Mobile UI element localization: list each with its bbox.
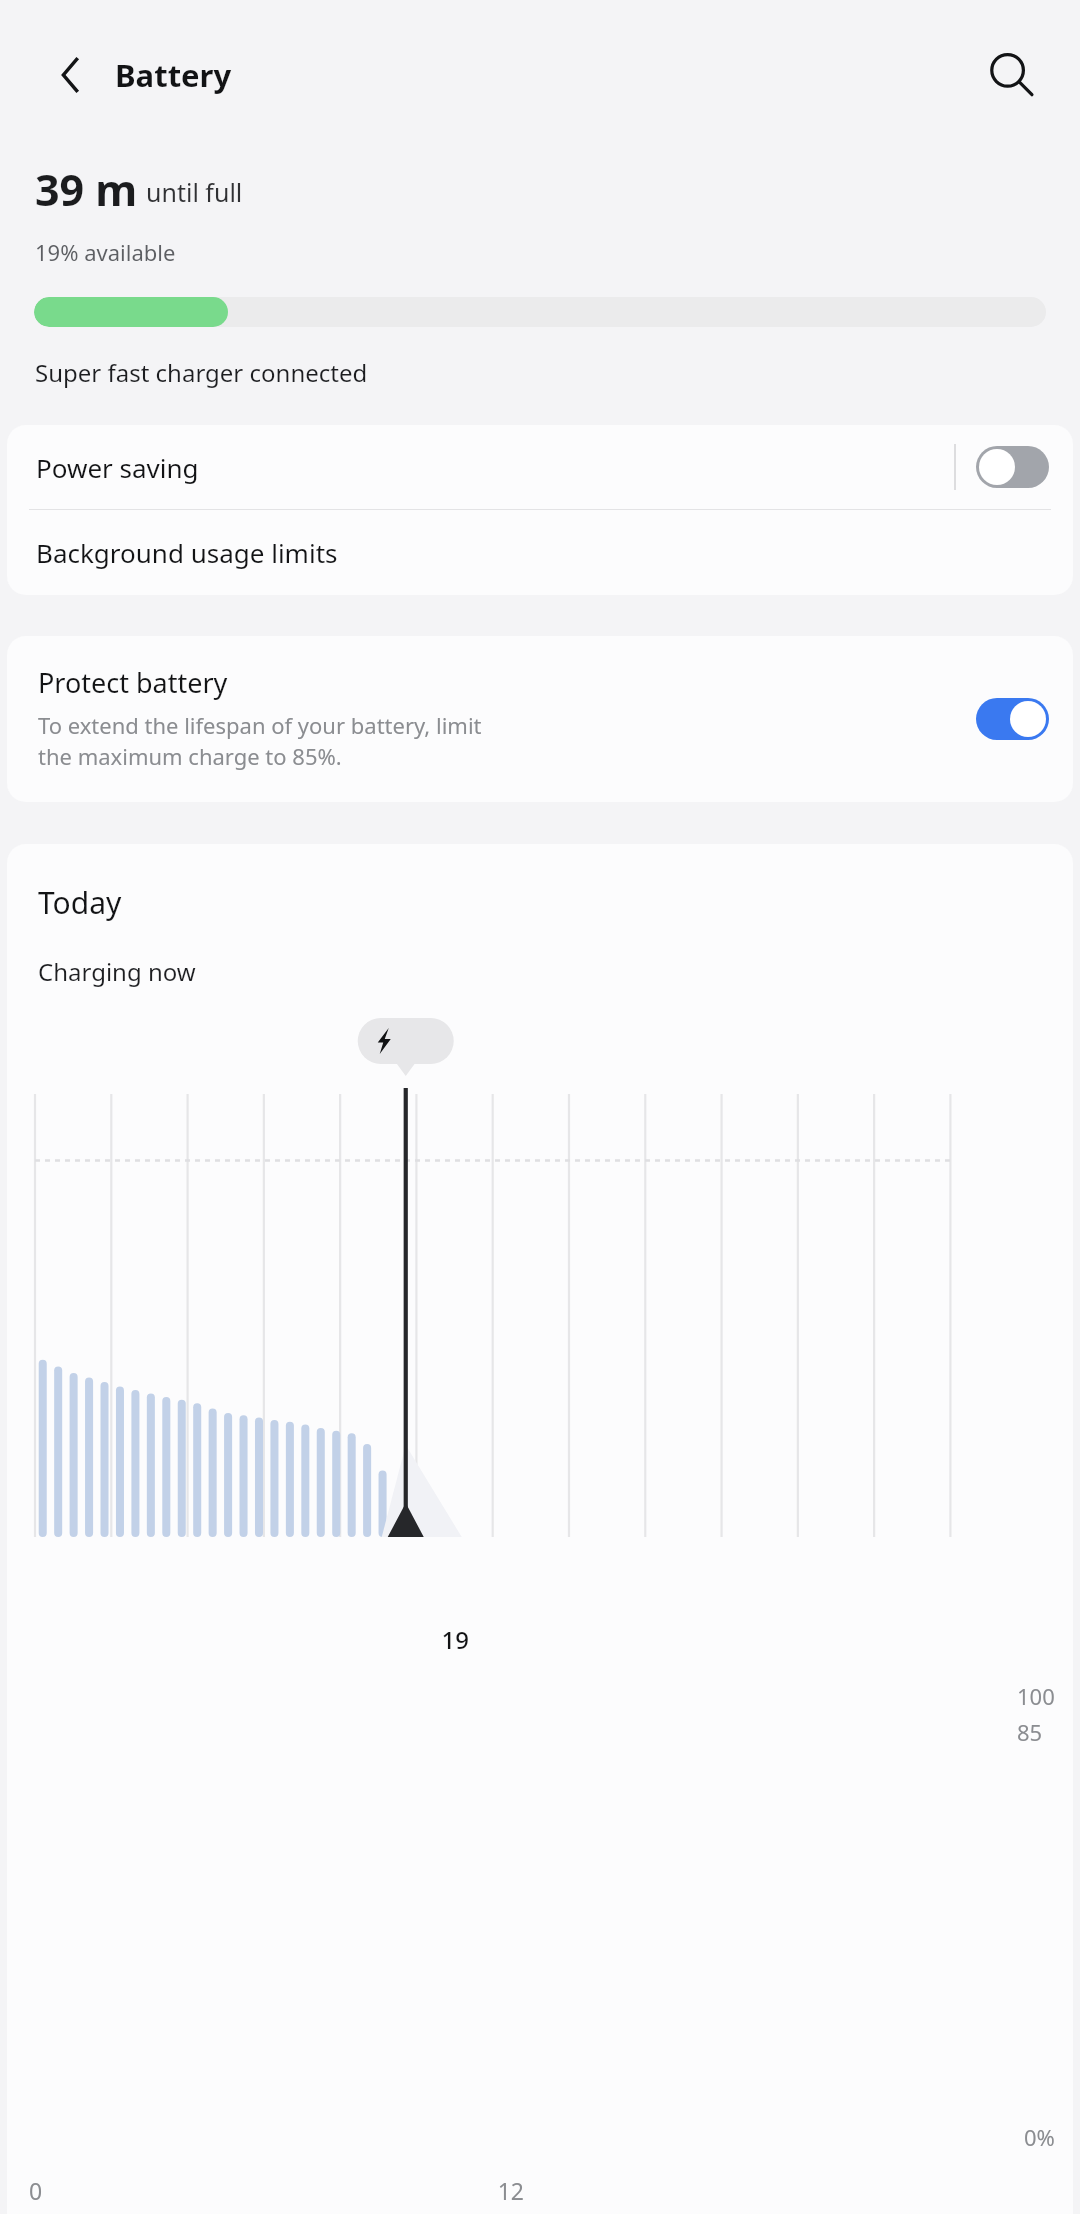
staticText: Super fast charger connected	[35, 356, 368, 389]
button[interactable]: Toggle on	[976, 698, 1049, 740]
button[interactable]: Power saving	[7, 425, 1073, 509]
staticText: 39 m	[35, 160, 138, 219]
staticText: Protect battery	[38, 664, 228, 701]
staticText: 19% available	[35, 237, 176, 267]
staticText: Power saving	[36, 450, 954, 485]
button[interactable]: Background usage limits	[7, 510, 1073, 595]
staticText: 19	[7, 1623, 469, 1656]
button[interactable]: Back	[40, 45, 100, 105]
staticText: 0	[29, 2175, 43, 2206]
staticText: Battery	[115, 54, 232, 96]
staticText: Charging now	[38, 955, 196, 988]
button[interactable]: Protect battery	[7, 636, 1073, 802]
staticText: Today	[38, 882, 122, 923]
staticText: Background usage limits	[36, 535, 338, 570]
staticText: 85	[1017, 1717, 1043, 1747]
staticText: 0%	[1024, 2122, 1055, 2152]
staticText: To extend the lifespan of your battery, …	[38, 710, 482, 772]
staticText: 100	[1017, 1681, 1055, 1711]
button[interactable]: Toggle off	[976, 446, 1049, 488]
button[interactable]: Search	[980, 44, 1042, 106]
staticText: 12	[7, 2175, 524, 2206]
staticText: until full	[146, 175, 243, 209]
